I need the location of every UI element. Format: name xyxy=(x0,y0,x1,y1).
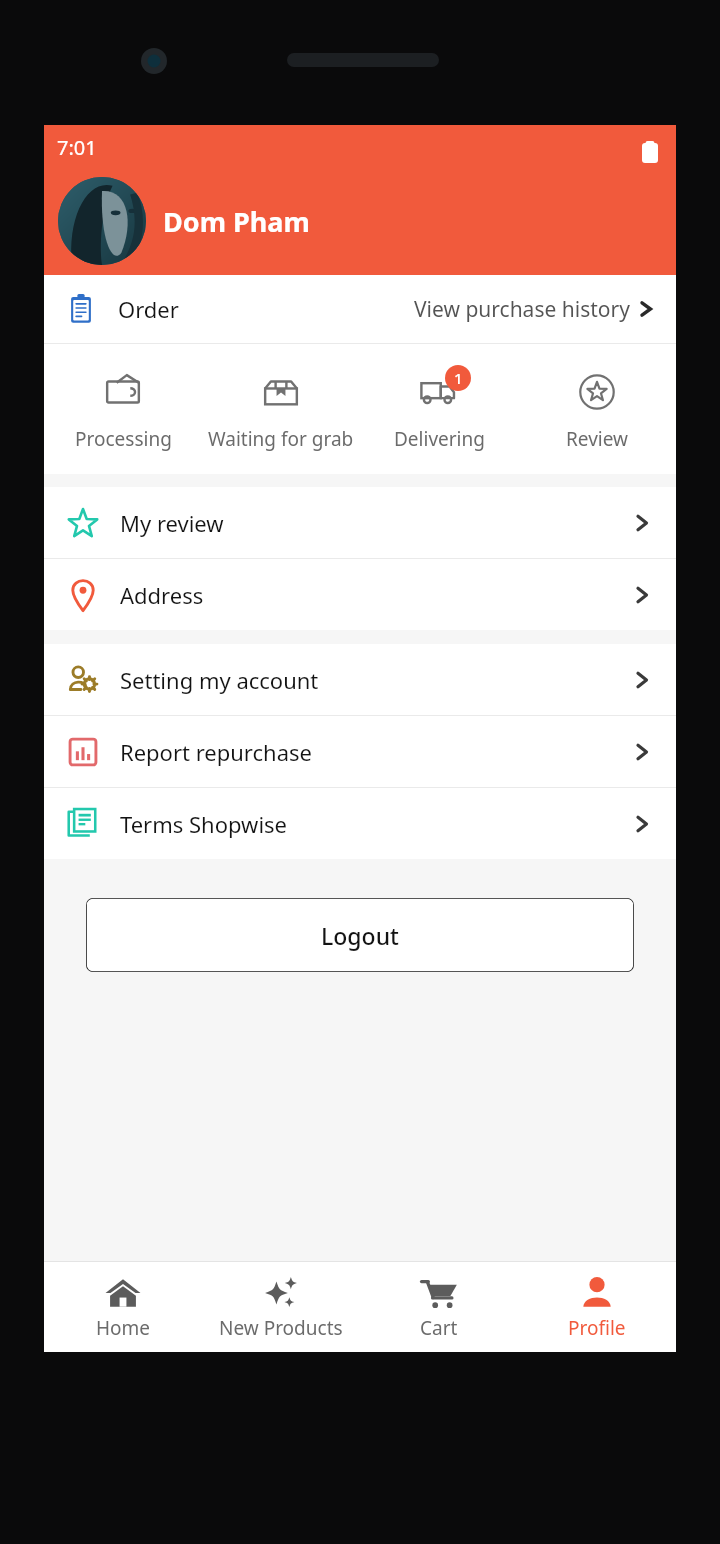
staticText: 7:01 xyxy=(57,134,97,161)
staticText: 1 xyxy=(454,368,463,388)
staticText: New Products xyxy=(219,1315,343,1341)
button[interactable]: Setting my account xyxy=(44,644,676,715)
staticText: Report repurchase xyxy=(120,737,312,767)
button[interactable]: Profile xyxy=(518,1262,676,1352)
button[interactable]: 1 xyxy=(360,344,518,474)
staticText: Order xyxy=(118,294,179,324)
staticText: Dom Pham xyxy=(163,203,310,240)
staticText: Address xyxy=(120,580,204,610)
button[interactable]: Address xyxy=(44,559,676,630)
staticText: Cart xyxy=(420,1315,458,1341)
button[interactable]: Processing xyxy=(44,344,202,474)
staticText: My review xyxy=(120,508,224,538)
staticText: Delivering xyxy=(394,426,485,452)
button[interactable]: Terms Shopwise xyxy=(44,788,676,859)
button[interactable]: New Products xyxy=(202,1262,360,1352)
staticText: Logout xyxy=(321,920,399,951)
staticText: Home xyxy=(96,1315,151,1341)
button[interactable]: Order xyxy=(44,275,676,343)
staticText: Waiting for grab xyxy=(208,426,354,452)
staticText: Setting my account xyxy=(120,665,319,695)
staticText: Terms Shopwise xyxy=(120,809,288,839)
staticText: View purchase history xyxy=(414,295,630,324)
button[interactable]: Report repurchase xyxy=(44,716,676,787)
button[interactable]: My review xyxy=(44,487,676,558)
staticText: Profile xyxy=(568,1315,626,1341)
button[interactable]: Home xyxy=(44,1262,202,1352)
button[interactable]: Cart xyxy=(360,1262,518,1352)
staticText: Processing xyxy=(75,426,172,452)
button[interactable]: Logout xyxy=(86,898,634,972)
button[interactable]: Review xyxy=(518,344,676,474)
staticText: Review xyxy=(566,426,628,452)
button[interactable]: Waiting for grab xyxy=(202,344,360,474)
